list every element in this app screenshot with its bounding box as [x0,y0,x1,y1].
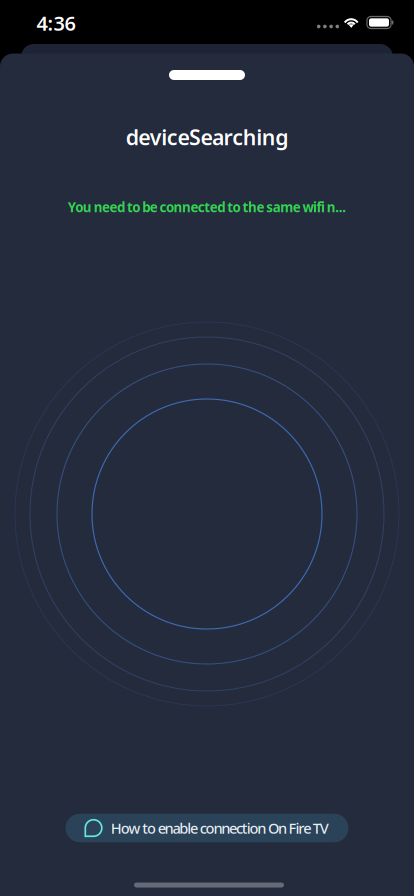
staticText: 4:36 [36,10,75,36]
button[interactable]: How to enable connection On Fire TV [65,814,348,842]
button[interactable]: Dismiss sheet [169,70,245,80]
staticText: deviceSearching [126,123,288,151]
staticText: How to enable connection On Fire TV [111,818,329,838]
staticText: You need to be connected to the same wif… [68,198,346,216]
